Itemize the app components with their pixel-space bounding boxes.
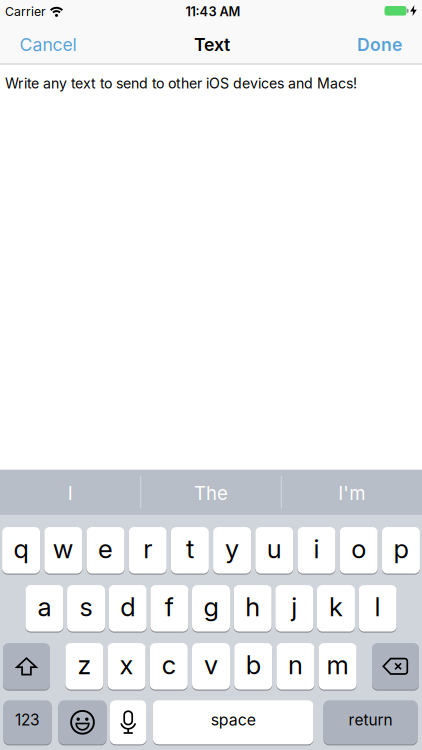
button[interactable]: n [276,643,314,689]
button[interactable]: m [319,643,357,689]
staticText: s [80,592,93,622]
button[interactable]: return [323,700,417,744]
staticText: y [225,534,239,564]
staticText: n [288,650,303,680]
button[interactable]: Done [357,34,402,55]
button[interactable]: r [129,527,167,573]
button[interactable]: z [65,643,103,689]
staticText: a [37,592,51,622]
button[interactable]: space [153,700,313,744]
staticText: u [267,534,282,564]
staticText: p [393,534,408,564]
button[interactable]: c [150,643,188,689]
staticText: f [165,592,174,622]
staticText: r [143,534,152,564]
staticText: x [120,650,134,680]
staticText: Cancel [19,34,76,55]
button[interactable]: b [234,643,272,689]
button[interactable]: Emoji [58,700,106,744]
staticText: k [329,592,343,622]
button[interactable]: f [150,585,188,631]
staticText: Carrier [5,4,46,19]
button[interactable]: i [297,527,335,573]
staticText: Write any text to send to other iOS devi… [5,75,357,92]
staticText: b [246,650,261,680]
button[interactable]: k [317,585,355,631]
staticText: m [327,650,349,680]
staticText: space [211,710,256,729]
staticText: Text [194,34,230,55]
staticText: d [120,592,135,622]
staticText: h [245,592,260,622]
staticText: I'm [338,482,365,504]
staticText: Done [357,34,402,55]
button[interactable]: v [192,643,230,689]
button[interactable]: g [192,585,230,631]
staticText: v [204,650,218,680]
button[interactable]: Numbers [3,700,51,744]
button[interactable]: a [25,585,63,631]
staticText: 11:43 AM [185,4,240,19]
staticText: w [53,534,74,564]
staticText: return [348,711,392,729]
button[interactable]: h [234,585,272,631]
staticText: 123 [15,711,40,729]
staticText: o [351,534,366,564]
button[interactable]: Delete [372,643,419,689]
button[interactable]: l [359,585,397,631]
staticText: I [68,482,73,504]
button[interactable]: s [67,585,105,631]
staticText: The [194,482,228,504]
staticText: e [98,534,113,564]
staticText: i [313,534,319,564]
button[interactable]: Shift [3,643,50,689]
button[interactable]: I [1,470,140,515]
button[interactable]: The [141,470,280,515]
staticText: z [77,650,91,680]
button[interactable]: Cancel [19,34,76,55]
button[interactable]: q [2,527,40,573]
staticText: t [186,534,194,564]
button[interactable]: o [340,527,378,573]
staticText: g [203,592,218,622]
button[interactable]: p [382,527,420,573]
button[interactable]: I'm [282,470,421,515]
button[interactable]: t [171,527,209,573]
staticText: l [375,592,381,622]
staticText: j [291,592,297,622]
button[interactable]: j [275,585,313,631]
button[interactable]: y [213,527,251,573]
button[interactable]: u [255,527,293,573]
staticText: c [162,650,176,680]
button[interactable]: w [44,527,82,573]
staticText: q [14,534,29,564]
button[interactable]: x [108,643,146,689]
button[interactable]: Dictate [110,700,146,744]
button[interactable]: e [86,527,124,573]
button[interactable]: d [109,585,147,631]
